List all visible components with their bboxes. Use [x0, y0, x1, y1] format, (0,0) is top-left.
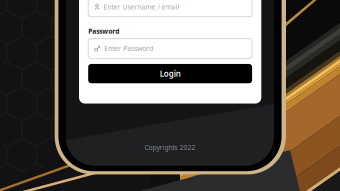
button[interactable]: Enter Password	[88, 39, 252, 58]
staticText: Password	[88, 27, 119, 36]
button[interactable]: Enter Username / email	[88, 0, 252, 17]
staticText: Login	[160, 68, 181, 79]
staticText: Enter Password	[104, 44, 153, 53]
button[interactable]: Login	[88, 64, 252, 83]
staticText: Enter Username / email	[103, 2, 179, 11]
staticText: Copyrights 2022	[144, 143, 195, 152]
